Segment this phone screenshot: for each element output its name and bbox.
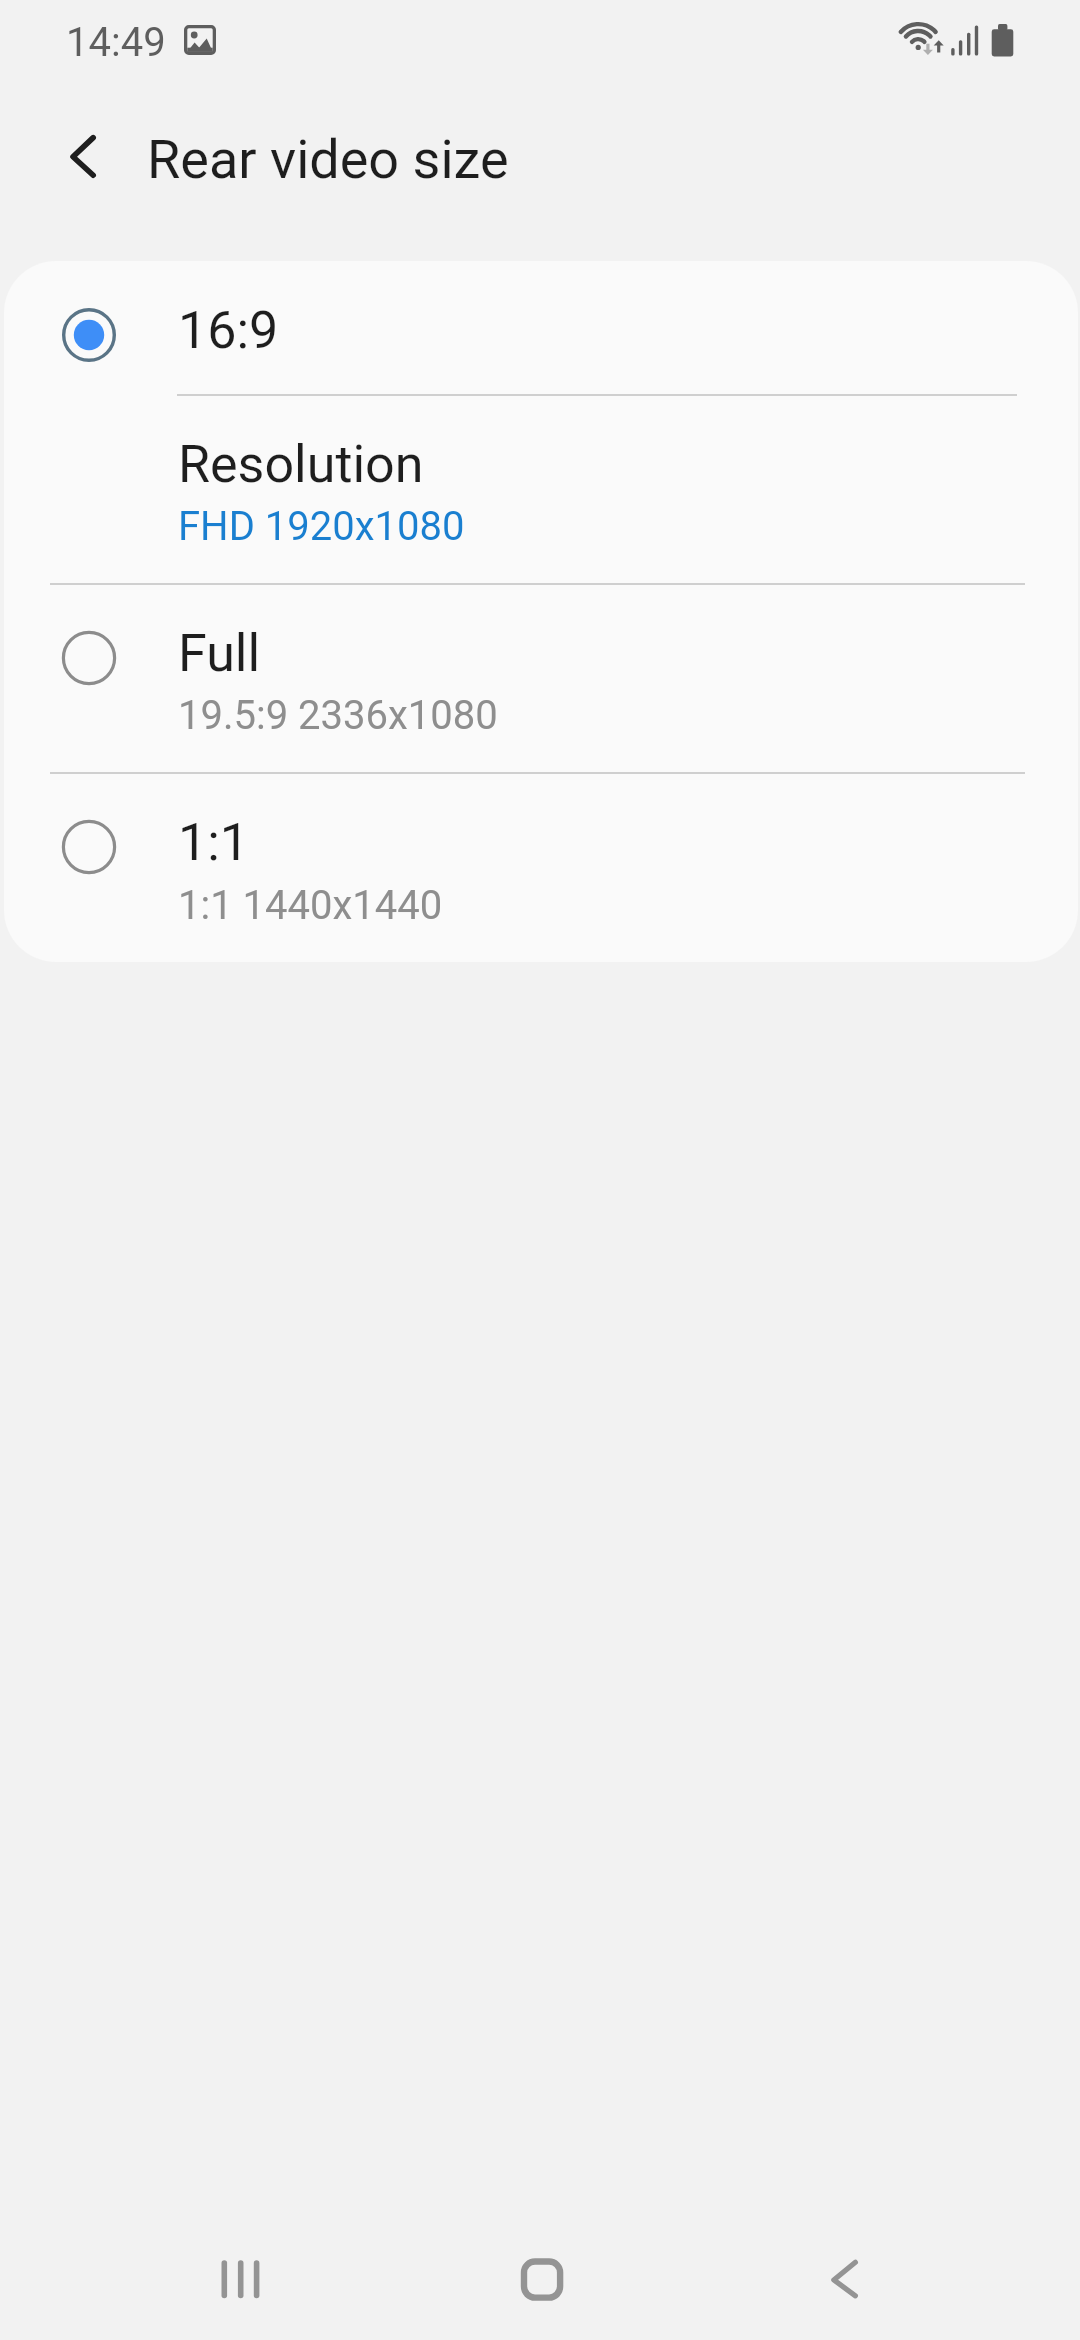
button[interactable]: Home: [482, 2220, 602, 2340]
staticText: Resolution: [178, 434, 424, 495]
button[interactable]: Back: [785, 2220, 905, 2340]
staticText: 14:49: [66, 19, 166, 66]
button[interactable]: 1:1: [4, 774, 1078, 962]
button[interactable]: Resolution: [4, 396, 1078, 583]
button[interactable]: Full: [4, 585, 1078, 772]
staticText: Full: [178, 623, 261, 684]
button[interactable]: Navigate up: [38, 118, 128, 196]
button[interactable]: 16:9: [4, 261, 1078, 395]
staticText: FHD 1920x1080: [178, 503, 465, 550]
staticText: Rear video size: [147, 128, 509, 191]
staticText: 16:9: [178, 300, 279, 361]
staticText: 1:1: [178, 812, 250, 873]
staticText: 1:1 1440x1440: [178, 882, 443, 929]
staticText: 19.5:9 2336x1080: [178, 692, 498, 739]
button[interactable]: Recent apps: [180, 2220, 300, 2340]
